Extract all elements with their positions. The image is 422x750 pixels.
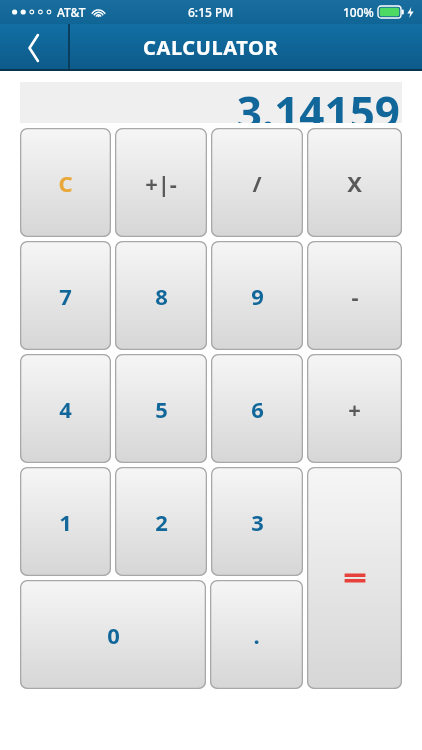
staticText: X	[347, 168, 362, 198]
button[interactable]: 3	[211, 467, 303, 576]
staticText: 5	[155, 394, 168, 424]
staticText: 0	[107, 620, 120, 650]
button[interactable]: +|-	[115, 128, 207, 237]
staticText: C	[58, 168, 73, 198]
button[interactable]: .	[210, 580, 303, 689]
button[interactable]: 5	[115, 354, 207, 463]
staticText: .	[253, 620, 260, 650]
staticText: AT&T	[57, 4, 86, 20]
button[interactable]: C	[20, 128, 111, 237]
staticText: /	[252, 168, 262, 198]
button[interactable]: Equals	[307, 467, 402, 689]
staticText: 8	[155, 281, 168, 311]
staticText: 2	[155, 507, 168, 537]
button[interactable]: +	[307, 354, 402, 463]
staticText: 9	[251, 281, 264, 311]
staticText: CALCULATOR	[143, 34, 279, 61]
button[interactable]: Back	[0, 24, 68, 71]
button[interactable]: -	[307, 241, 402, 350]
button[interactable]: 9	[211, 241, 303, 350]
staticText: 4	[59, 394, 72, 424]
button[interactable]: 1	[20, 467, 111, 576]
staticText: 1	[59, 507, 72, 537]
staticText: 6:15 PM	[188, 4, 234, 20]
staticText: 3.14159	[236, 82, 400, 123]
staticText: +|-	[145, 168, 177, 198]
staticText: 6	[251, 394, 264, 424]
button[interactable]: 0	[20, 580, 206, 689]
staticText: 100%	[343, 4, 374, 20]
staticText: 7	[59, 281, 72, 311]
button[interactable]: 2	[115, 467, 207, 576]
button[interactable]: X	[307, 128, 402, 237]
staticText: +	[348, 394, 361, 424]
button[interactable]: 7	[20, 241, 111, 350]
staticText: -	[351, 281, 359, 311]
button[interactable]: /	[211, 128, 303, 237]
button[interactable]: 6	[211, 354, 303, 463]
button[interactable]: 4	[20, 354, 111, 463]
staticText: 3	[251, 507, 264, 537]
button[interactable]: 8	[115, 241, 207, 350]
